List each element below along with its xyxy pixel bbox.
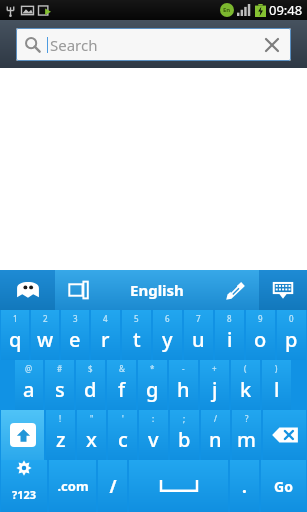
- staticText: t: [133, 326, 141, 353]
- button[interactable]: Handwriting: [211, 270, 259, 310]
- staticText: q: [9, 326, 22, 353]
- button[interactable]: Symbols and settings: [1, 460, 47, 512]
- button[interactable]: 5: [122, 310, 151, 360]
- staticText: :: [152, 413, 155, 424]
- staticText: ?123: [12, 487, 37, 502]
- button[interactable]: English: [102, 270, 211, 310]
- button[interactable]: ': [108, 410, 137, 460]
- staticText: r: [101, 326, 110, 353]
- staticText: x: [86, 426, 97, 453]
- staticText: ): [275, 363, 278, 374]
- button[interactable]: *: [138, 360, 167, 410]
- staticText: 4: [103, 313, 108, 324]
- staticText: 09:48: [269, 1, 303, 19]
- staticText: &: [119, 363, 125, 374]
- staticText: m: [237, 426, 256, 453]
- button[interactable]: /: [98, 460, 127, 512]
- staticText: s: [55, 376, 65, 403]
- button[interactable]: .com: [49, 460, 96, 512]
- staticText: 5: [134, 313, 139, 324]
- staticText: ": [90, 413, 94, 424]
- button[interactable]: GO Keyboard: [0, 270, 55, 310]
- button[interactable]: @: [15, 360, 43, 410]
- staticText: 6: [165, 313, 170, 324]
- button[interactable]: !: [46, 410, 75, 460]
- button[interactable]: Space: [129, 460, 228, 512]
- staticText: p: [285, 326, 298, 353]
- staticText: ': [122, 413, 124, 424]
- staticText: +: [212, 363, 217, 374]
- staticText: g: [146, 376, 159, 403]
- staticText: j: [212, 376, 218, 403]
- button[interactable]: 4: [91, 310, 120, 360]
- button[interactable]: 2: [31, 310, 59, 360]
- staticText: /: [214, 413, 217, 424]
- staticText: d: [84, 376, 97, 403]
- staticText: .com: [57, 477, 89, 495]
- staticText: ?: [245, 413, 249, 424]
- button[interactable]: Search: [16, 28, 291, 61]
- button[interactable]: +: [200, 360, 229, 410]
- button[interactable]: $: [76, 360, 105, 410]
- staticText: e: [69, 326, 81, 353]
- staticText: u: [192, 326, 205, 353]
- staticText: 3: [73, 313, 78, 324]
- staticText: 0: [289, 313, 294, 324]
- button[interactable]: Clear search: [257, 30, 287, 60]
- button[interactable]: .: [230, 460, 259, 512]
- staticText: 2: [43, 313, 48, 324]
- staticText: v: [148, 426, 159, 453]
- button[interactable]: 9: [246, 310, 275, 360]
- staticText: .: [242, 475, 247, 498]
- staticText: f: [118, 376, 126, 403]
- button[interactable]: ): [262, 360, 291, 410]
- staticText: #: [57, 363, 63, 374]
- staticText: !: [59, 413, 62, 424]
- button[interactable]: ?: [232, 410, 261, 460]
- button[interactable]: 0: [277, 310, 306, 360]
- button[interactable]: 6: [153, 310, 182, 360]
- staticText: z: [56, 426, 66, 453]
- staticText: k: [240, 376, 252, 403]
- staticText: c: [118, 426, 128, 453]
- button[interactable]: #: [45, 360, 74, 410]
- button[interactable]: Backspace: [263, 410, 306, 460]
- staticText: Go: [274, 477, 293, 496]
- staticText: n: [209, 426, 222, 453]
- button[interactable]: Shift: [1, 410, 44, 460]
- staticText: Search: [50, 35, 98, 55]
- staticText: y: [162, 326, 173, 353]
- button[interactable]: 8: [215, 310, 244, 360]
- button[interactable]: 1: [1, 310, 29, 360]
- staticText: (: [244, 363, 247, 374]
- staticText: @: [25, 363, 33, 374]
- staticText: l: [274, 376, 280, 403]
- button[interactable]: ": [77, 410, 106, 460]
- button[interactable]: ;: [170, 410, 199, 460]
- staticText: a: [23, 376, 35, 403]
- button[interactable]: 7: [184, 310, 213, 360]
- staticText: h: [177, 376, 190, 403]
- button[interactable]: :: [139, 410, 168, 460]
- staticText: 9: [258, 313, 263, 324]
- staticText: w: [37, 326, 54, 353]
- staticText: ;: [183, 413, 186, 424]
- staticText: English: [130, 280, 184, 300]
- button[interactable]: /: [201, 410, 230, 460]
- staticText: 1: [13, 313, 18, 324]
- staticText: i: [227, 326, 233, 353]
- button[interactable]: Input method: [55, 270, 102, 310]
- button[interactable]: 3: [61, 310, 89, 360]
- staticText: b: [178, 426, 191, 453]
- button[interactable]: Hide keyboard: [259, 270, 307, 310]
- button[interactable]: -: [169, 360, 198, 410]
- staticText: 8: [227, 313, 232, 324]
- button[interactable]: &: [107, 360, 136, 410]
- staticText: 7: [196, 313, 201, 324]
- button[interactable]: (: [231, 360, 260, 410]
- staticText: o: [254, 326, 267, 353]
- staticText: $: [88, 363, 93, 374]
- staticText: /: [109, 475, 117, 498]
- staticText: *: [150, 363, 155, 374]
- button[interactable]: Go: [261, 460, 306, 512]
